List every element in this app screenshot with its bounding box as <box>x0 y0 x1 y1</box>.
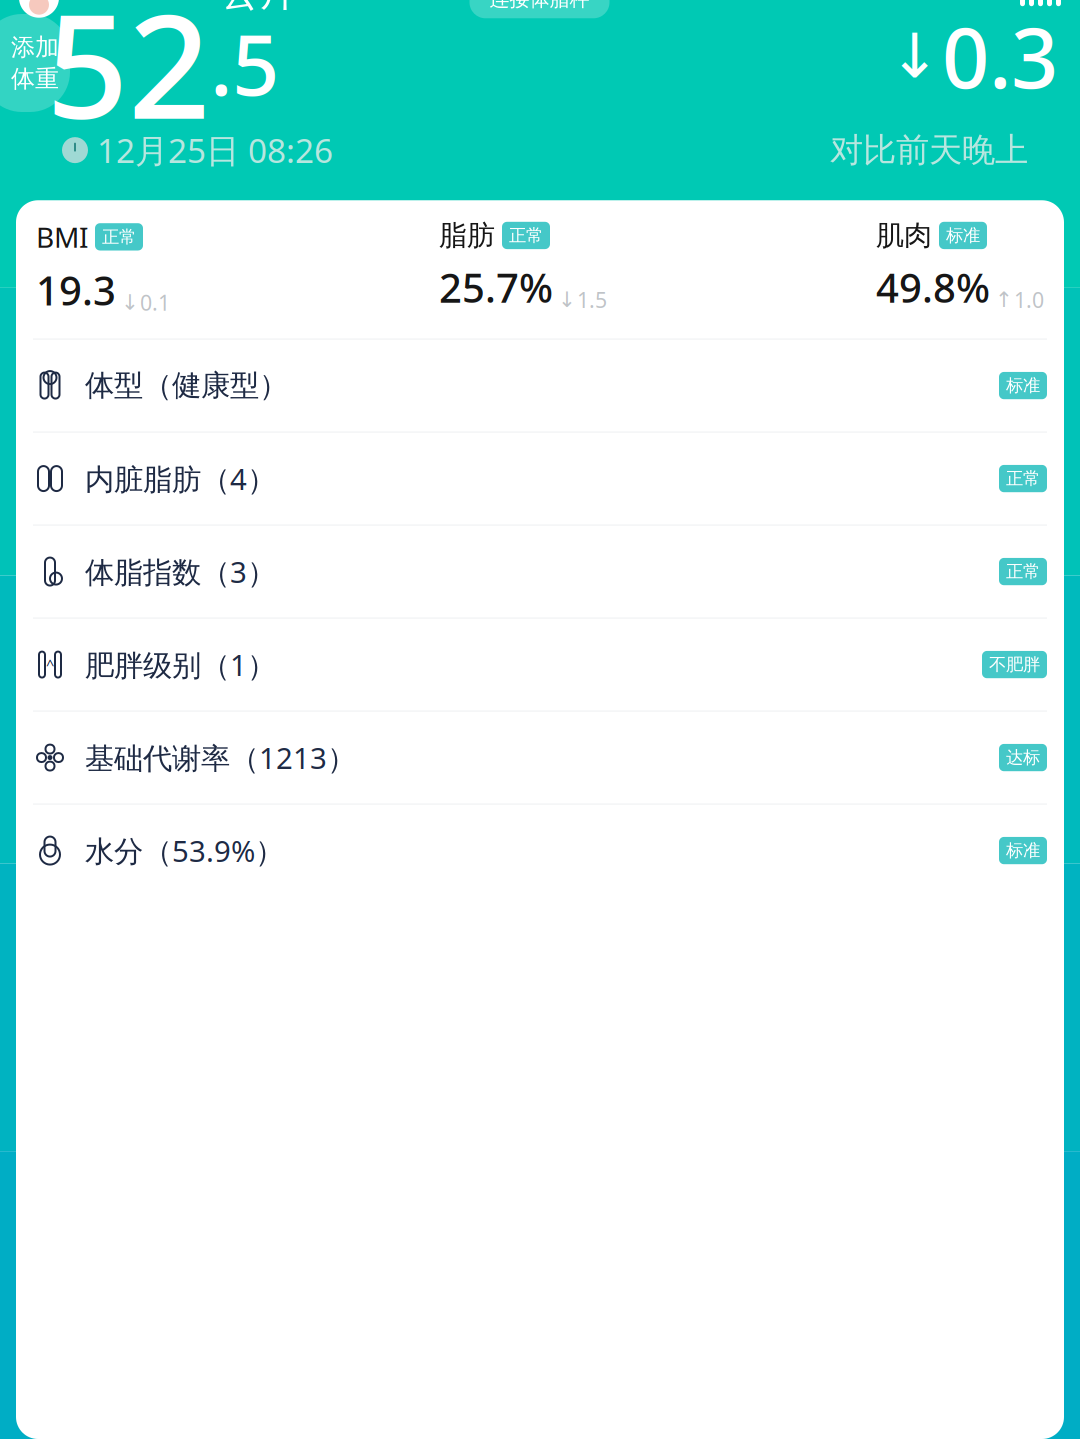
staticText: 52 <box>46 0 210 159</box>
staticText: 1.0 <box>1014 285 1044 314</box>
staticText: 正常 <box>1006 561 1040 582</box>
staticText: 添加 <box>11 32 59 62</box>
staticText: 不肥胖 <box>989 654 1040 675</box>
staticText: 正常 <box>1006 468 1040 489</box>
button[interactable]: 水分（53.9%） <box>16 805 1064 897</box>
staticText: ↓ <box>889 21 940 91</box>
button[interactable]: Profile <box>19 0 59 18</box>
button[interactable]: 连接体脂秤 <box>469 0 609 18</box>
staticText: 0.1 <box>140 288 170 316</box>
staticText: 标准 <box>946 225 980 246</box>
staticText: 正常 <box>102 226 136 247</box>
staticText: ↓ <box>121 290 139 314</box>
button[interactable]: 体脂指数（3） <box>16 526 1064 618</box>
staticText: 肌肉 <box>876 218 932 253</box>
staticText: 基础代谢率（1213） <box>85 738 356 777</box>
staticText: 公斤 <box>220 0 300 16</box>
button[interactable]: 体型（健康型） <box>16 340 1064 432</box>
staticText: 达标 <box>1006 747 1040 768</box>
staticText: 12月25日 08:26 <box>97 128 333 172</box>
staticText: ↑ <box>995 287 1013 312</box>
staticText: 25.7% <box>439 261 553 314</box>
staticText: .5 <box>210 8 279 118</box>
staticText: 对比前天晚上 <box>830 130 1028 171</box>
staticText: 体脂指数（3） <box>85 552 276 591</box>
staticText: 水分（53.9%） <box>85 831 284 870</box>
staticText: 标准 <box>1006 375 1040 396</box>
button[interactable]: 基础代谢率（1213） <box>16 712 1064 804</box>
staticText: 体型（健康型） <box>85 368 288 404</box>
staticText: 1.5 <box>577 285 607 314</box>
staticText: 肥胖级别（1） <box>85 645 276 684</box>
staticText: 体重 <box>11 64 59 93</box>
staticText: ^ <box>46 655 54 674</box>
staticText: 正常 <box>509 225 543 246</box>
staticText: BMI <box>36 218 88 255</box>
staticText: 标准 <box>1006 840 1040 861</box>
staticText: ↓ <box>558 287 576 312</box>
button[interactable]: 内脏脂肪（4） <box>16 433 1064 525</box>
staticText: 0.3 <box>942 1 1058 111</box>
staticText: 脂肪 <box>439 218 495 253</box>
staticText: 49.8% <box>876 261 990 314</box>
button[interactable]: History <box>1020 0 1061 8</box>
staticText: 连接体脂秤 <box>489 0 589 11</box>
staticText: 19.3 <box>36 263 116 316</box>
button[interactable]: 添加 <box>0 14 70 112</box>
staticText: 内脏脂肪（4） <box>85 459 276 498</box>
button[interactable]: ^ <box>16 619 1064 711</box>
